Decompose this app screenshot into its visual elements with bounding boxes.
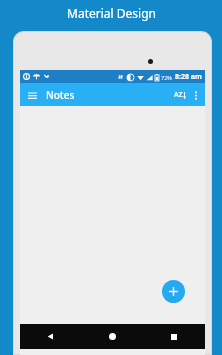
staticText: Notes	[46, 88, 75, 102]
staticText: Material Design	[67, 5, 156, 21]
button[interactable]: More options	[190, 86, 202, 104]
staticText: AZ	[174, 90, 183, 100]
button[interactable]: Sort alphabetically	[172, 86, 188, 104]
button[interactable]: Recents	[143, 324, 205, 349]
button[interactable]: Back	[20, 324, 81, 349]
staticText: 72%	[161, 74, 172, 81]
button[interactable]: Home	[81, 324, 143, 349]
button[interactable]: Add note	[162, 280, 185, 303]
staticText: 8:28 am	[175, 72, 202, 82]
button[interactable]: Open navigation drawer	[24, 87, 40, 103]
